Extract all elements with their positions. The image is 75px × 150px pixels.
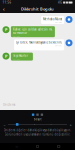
staticText: Görünümleri uygulamaların tümünü değişti… — [4, 133, 70, 136]
button[interactable]: Recent apps — [54, 143, 64, 150]
staticText: Kahve için soldan adresin mi, siz misini… — [13, 28, 53, 35]
button[interactable]: Option two — [36, 113, 39, 116]
staticText: Merhaba Murat — [43, 17, 62, 21]
staticText: Dikkrshit Bogolu — [21, 6, 54, 12]
button[interactable]: Option three — [41, 113, 43, 116]
button[interactable]: Back — [0, 5, 8, 13]
staticText: P — [5, 27, 7, 32]
button[interactable]: Decrease — [2, 122, 6, 126]
button[interactable]: Option one — [32, 113, 34, 116]
staticText: Boyut — [33, 117, 41, 121]
staticText: ◁ — [15, 145, 17, 148]
staticText: P — [5, 53, 7, 59]
staticText: – — [3, 122, 5, 127]
button[interactable]: Home — [32, 143, 42, 150]
staticText: Teşekkürler — [13, 54, 28, 57]
staticText: Apr 15:02 — [13, 58, 20, 60]
staticText: 11:56 — [2, 1, 11, 4]
staticText: ‹ — [3, 5, 5, 13]
staticText: Önizlemi öğeler daha küçük veya daha büy… — [3, 128, 71, 132]
staticText: 4G — [58, 1, 62, 4]
staticText: Apr 14:06 — [55, 21, 62, 23]
button[interactable]: Increase — [68, 122, 72, 126]
staticText: Apr 14:09 — [13, 35, 20, 37]
staticText: Önizleme — [3, 103, 16, 106]
staticText: Apr 15:01 — [55, 45, 62, 47]
button[interactable]: Önizleme — [0, 101, 19, 108]
staticText: İyi Öitek. Yakınlardaysanız beklerim. — [16, 41, 62, 44]
staticText: + — [69, 122, 71, 127]
